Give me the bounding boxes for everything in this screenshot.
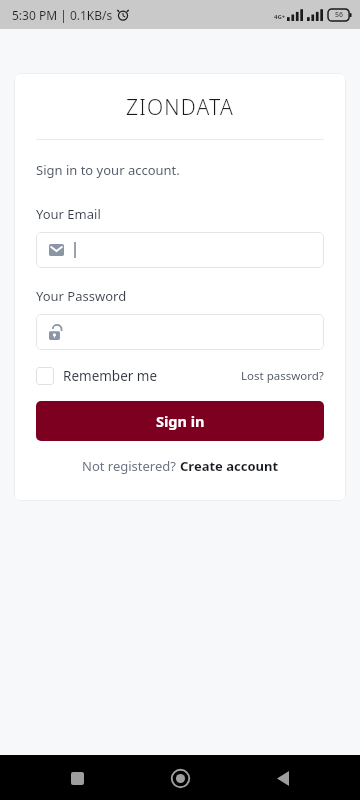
staticText: 5:30 PM | 0.1KB/s xyxy=(12,7,113,23)
button[interactable]: Create account xyxy=(180,457,279,475)
staticText: Sign in to your account. xyxy=(36,161,180,179)
staticText: Not registered? xyxy=(82,457,180,475)
staticText: ZIONDATA xyxy=(126,93,234,122)
staticText: 4G+ xyxy=(274,13,286,21)
staticText: Lost password? xyxy=(241,368,324,384)
other: Email xyxy=(49,244,64,256)
staticText: Create account xyxy=(180,457,279,475)
button[interactable]: Back xyxy=(266,761,300,795)
other: Password xyxy=(49,324,63,340)
staticText: 56 xyxy=(335,10,344,20)
button[interactable]: Recent apps xyxy=(60,761,94,795)
staticText: Your Password xyxy=(36,287,127,305)
button[interactable]: Lost password? xyxy=(241,368,324,384)
staticText: Your Email xyxy=(36,205,101,223)
staticText: Sign in xyxy=(156,411,205,431)
button[interactable]: Password xyxy=(36,314,324,350)
button[interactable]: Sign in xyxy=(36,401,324,441)
button[interactable]: Home xyxy=(163,761,197,795)
button[interactable]: Email xyxy=(36,232,324,268)
staticText: Remember me xyxy=(63,367,158,385)
button[interactable]: Remember me xyxy=(36,367,158,385)
